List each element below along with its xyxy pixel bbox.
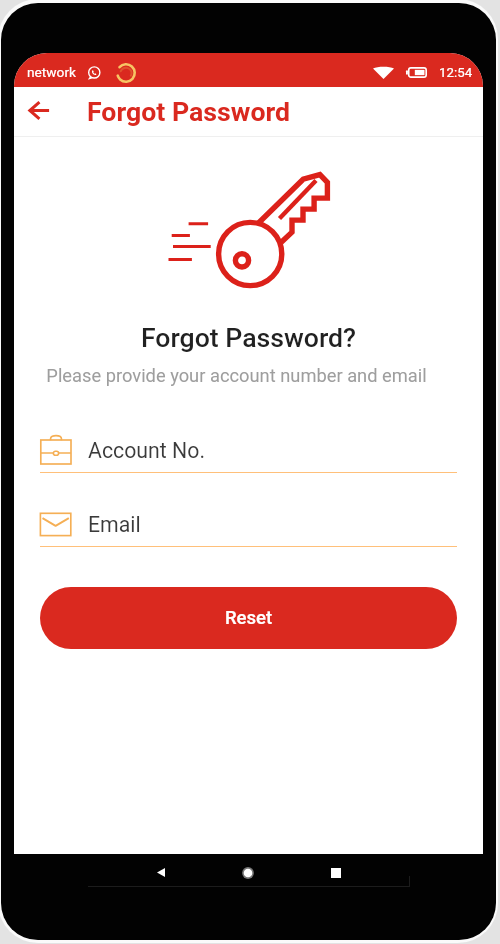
staticText: 12:54 <box>439 65 473 81</box>
staticText: Forgot Password <box>87 96 291 127</box>
button[interactable]: Recent apps <box>292 852 380 893</box>
button[interactable]: Home <box>204 852 292 893</box>
staticText: Reset <box>225 607 273 629</box>
staticText: Please provide your account number and e… <box>14 365 471 386</box>
button[interactable]: Email <box>40 502 457 547</box>
button[interactable]: Account No. <box>40 428 457 473</box>
staticText: Forgot Password? <box>14 322 483 353</box>
staticText: network <box>27 64 76 80</box>
staticText: Email <box>88 512 141 537</box>
button[interactable]: Reset <box>40 587 457 649</box>
button[interactable]: Back <box>117 852 205 893</box>
staticText: Account No. <box>88 438 206 463</box>
button[interactable]: Back <box>14 86 63 135</box>
